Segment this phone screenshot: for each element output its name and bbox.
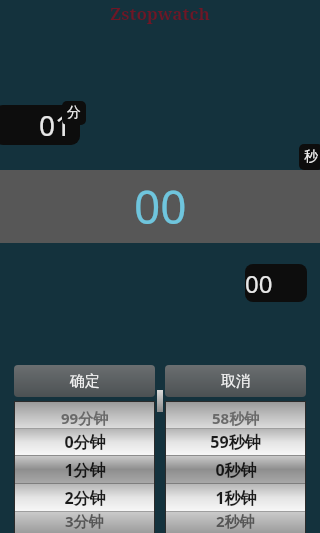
button[interactable]: 58秒钟 [166, 402, 305, 428]
button[interactable]: 2分钟 [15, 484, 154, 511]
button[interactable]: 0分钟 [15, 429, 154, 455]
staticText: 2分钟 [64, 487, 106, 509]
staticText: 1秒钟 [215, 487, 257, 509]
staticText: 00 [134, 175, 187, 238]
staticText: 0秒钟 [215, 459, 257, 481]
staticText: 分 [67, 104, 81, 122]
staticText: Zstopwatch [110, 2, 210, 25]
staticText: 确定 [70, 372, 100, 391]
button[interactable]: 1秒钟 [166, 484, 305, 511]
button[interactable]: 1分钟 [15, 456, 154, 483]
button[interactable]: 取消 [165, 365, 306, 397]
staticText: 取消 [221, 372, 251, 391]
staticText: 2秒钟 [216, 511, 255, 531]
button[interactable]: 00 [0, 170, 320, 243]
staticText: 01 [39, 106, 72, 144]
button[interactable]: 01 [0, 105, 80, 145]
button[interactable]: 59秒钟 [166, 429, 305, 455]
staticText: 3分钟 [65, 511, 104, 531]
button[interactable]: 0秒钟 [166, 456, 305, 483]
staticText: 1分钟 [64, 459, 106, 481]
staticText: 59秒钟 [210, 431, 261, 453]
button[interactable]: 00 [245, 264, 307, 302]
button[interactable]: 分 [62, 101, 86, 125]
staticText: 99分钟 [61, 408, 109, 428]
button[interactable]: 2秒钟 [166, 512, 305, 533]
staticText: 00 [245, 267, 273, 300]
staticText: 58秒钟 [212, 408, 260, 428]
staticText: 秒 [304, 148, 318, 166]
button[interactable]: 99分钟 [15, 402, 154, 428]
button[interactable]: 秒 [299, 144, 320, 170]
staticText: 0分钟 [64, 431, 106, 453]
button[interactable]: 3分钟 [15, 512, 154, 533]
button[interactable]: 确定 [14, 365, 155, 397]
